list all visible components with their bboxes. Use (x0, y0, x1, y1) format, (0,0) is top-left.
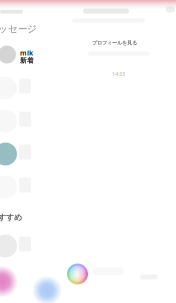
button[interactable]: プロフィールを見る (0, 0, 137, 46)
staticText: mik (20, 48, 33, 57)
staticText: おすすめ (0, 212, 22, 222)
staticText: プロフィールを見る (92, 39, 137, 46)
button[interactable]: Assistant (0, 0, 88, 284)
staticText: 14:33 (112, 70, 125, 78)
staticText: 新着 (20, 56, 34, 65)
staticText: メッセージ (0, 23, 37, 35)
